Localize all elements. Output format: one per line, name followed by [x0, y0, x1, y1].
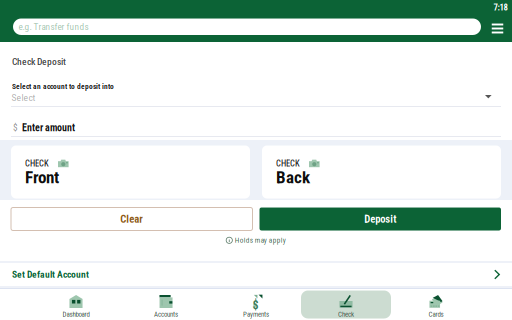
button[interactable]: Menu: [487, 18, 507, 38]
staticText: Front: [25, 167, 59, 187]
button[interactable]: Accounts: [121, 290, 211, 318]
staticText: CHECK: [25, 158, 49, 168]
staticText: Clear: [120, 213, 143, 225]
button[interactable]: $: [211, 290, 301, 318]
staticText: Payments: [243, 310, 269, 318]
staticText: Cards: [428, 310, 443, 318]
button[interactable]: CHECK: [11, 145, 250, 198]
staticText: Deposit: [364, 213, 396, 225]
button[interactable]: Set Default Account: [0, 261, 512, 287]
button[interactable]: Deposit: [259, 207, 501, 230]
button[interactable]: Dashboard: [31, 290, 121, 318]
staticText: Dashboard: [62, 310, 89, 318]
staticText: Check Deposit: [12, 56, 66, 67]
staticText: Accounts: [154, 310, 178, 318]
button[interactable]: Cards: [391, 290, 481, 318]
staticText: e.g. Transfer funds: [18, 21, 88, 32]
staticText: Select an account to deposit into: [12, 82, 114, 91]
staticText: Holds may apply: [235, 236, 286, 245]
staticText: Set Default Account: [12, 269, 89, 280]
button[interactable]: Clear: [11, 207, 252, 230]
staticText: $: [252, 298, 258, 312]
staticText: CHECK: [276, 158, 300, 168]
staticText: Back: [276, 167, 310, 187]
staticText: Check: [338, 310, 354, 318]
button[interactable]: Check: [301, 290, 391, 318]
staticText: $: [13, 122, 18, 133]
button[interactable]: CHECK: [262, 145, 501, 198]
staticText: Select: [11, 92, 35, 103]
staticText: Enter amount: [22, 122, 75, 134]
staticText: 7:18: [493, 2, 507, 12]
